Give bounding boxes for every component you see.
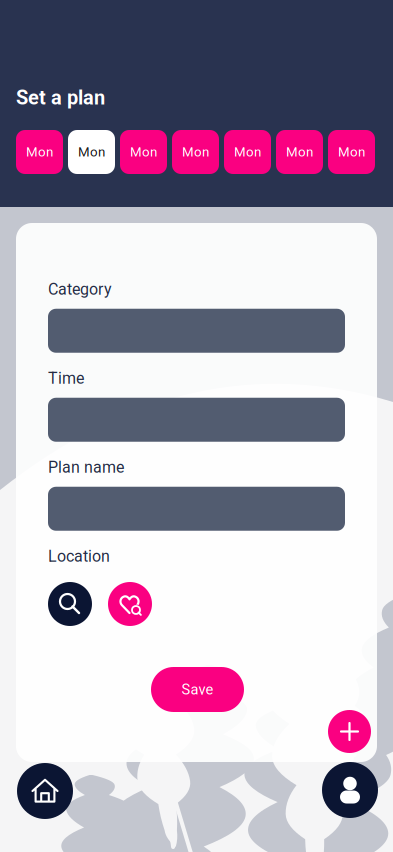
staticText: Mon xyxy=(26,144,53,160)
staticText: Plan name xyxy=(48,458,124,477)
staticText: Mon xyxy=(286,144,313,160)
button[interactable]: Saved locations xyxy=(108,582,152,626)
button[interactable]: Mon xyxy=(328,130,375,174)
staticText: Mon xyxy=(338,144,365,160)
button[interactable]: Mon xyxy=(172,130,219,174)
staticText: Mon xyxy=(78,144,105,160)
staticText: Mon xyxy=(182,144,209,160)
button[interactable]: Profile xyxy=(322,762,378,818)
button[interactable]: Add xyxy=(328,710,371,753)
staticText: Mon xyxy=(130,144,157,160)
button[interactable]: Save xyxy=(151,667,244,712)
staticText: Category xyxy=(48,280,112,299)
staticText: Time xyxy=(48,369,84,388)
staticText: Mon xyxy=(234,144,261,160)
button[interactable]: Mon xyxy=(16,130,63,174)
button[interactable]: Home xyxy=(17,763,73,819)
button[interactable]: Mon xyxy=(120,130,167,174)
button[interactable]: Mon xyxy=(276,130,323,174)
button[interactable]: Mon xyxy=(68,130,115,174)
staticText: Set a plan xyxy=(16,86,105,109)
staticText: Save xyxy=(181,681,213,698)
staticText: Location xyxy=(48,547,110,566)
button[interactable]: Mon xyxy=(224,130,271,174)
button[interactable]: Search for a location xyxy=(48,582,92,626)
